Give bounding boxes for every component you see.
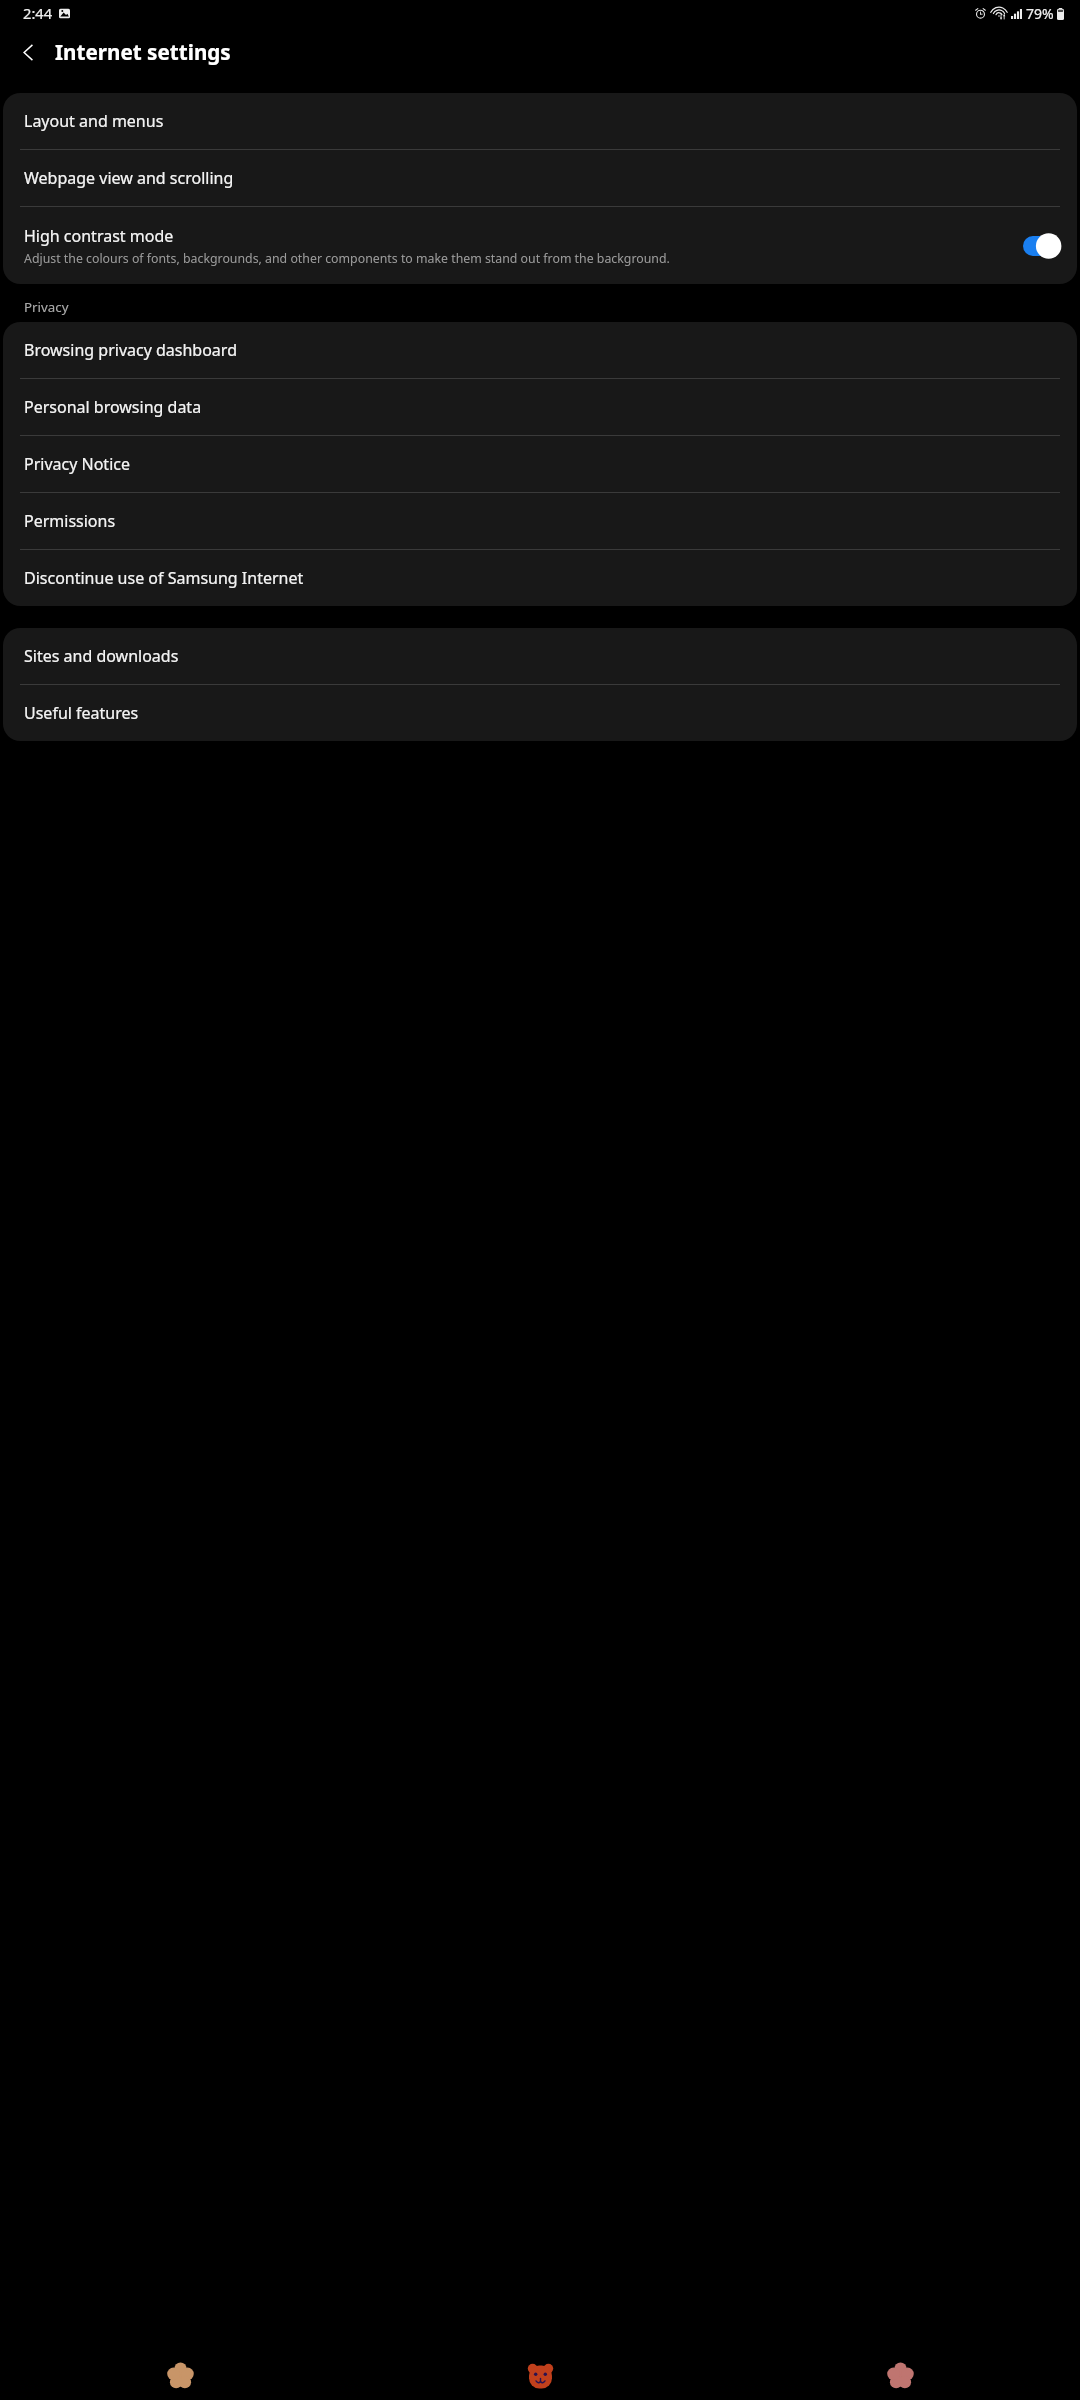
staticText: Webpage view and scrolling — [24, 167, 234, 189]
staticText: Privacy Notice — [24, 453, 130, 475]
button[interactable]: Discontinue use of Samsung Internet — [3, 550, 1077, 606]
staticText: Browsing privacy dashboard — [24, 339, 237, 361]
staticText: Personal browsing data — [24, 396, 202, 418]
button[interactable]: Back — [720, 2350, 1080, 2400]
staticText: 79% — [1026, 4, 1054, 23]
button[interactable]: High contrast mode — [3, 207, 1077, 284]
staticText: Useful features — [24, 702, 139, 724]
button[interactable]: Sites and downloads — [3, 628, 1077, 684]
staticText: Internet settings — [55, 38, 231, 66]
button[interactable]: Privacy Notice — [3, 436, 1077, 492]
button[interactable]: Layout and menus — [3, 93, 1077, 149]
button[interactable]: Recents — [0, 2350, 360, 2400]
button[interactable]: Useful features — [3, 685, 1077, 741]
staticText: 2:44 — [23, 3, 53, 23]
staticText: High contrast mode — [24, 225, 174, 247]
staticText: Layout and menus — [24, 110, 164, 132]
button[interactable]: Permissions — [3, 493, 1077, 549]
staticText: Sites and downloads — [24, 645, 179, 667]
button[interactable]: High contrast mode toggle — [1023, 233, 1062, 259]
staticText: Privacy — [24, 298, 69, 316]
button[interactable]: Personal browsing data — [3, 379, 1077, 435]
button[interactable]: Webpage view and scrolling — [3, 150, 1077, 206]
staticText: Permissions — [24, 510, 116, 532]
staticText: Discontinue use of Samsung Internet — [24, 567, 304, 589]
button[interactable]: Home — [360, 2350, 720, 2400]
staticText: Adjust the colours of fonts, backgrounds… — [24, 250, 670, 267]
button[interactable]: Browsing privacy dashboard — [3, 322, 1077, 378]
button[interactable]: Back — [14, 38, 42, 66]
